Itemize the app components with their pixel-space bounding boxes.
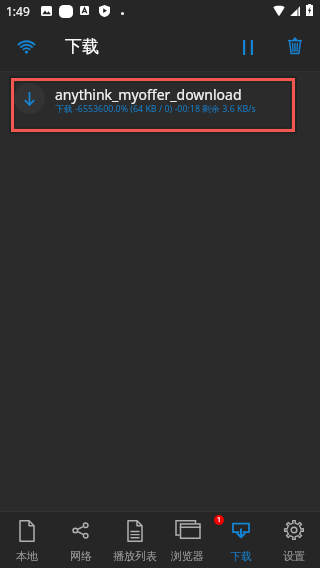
staticText: 1:49 [6,3,30,19]
button[interactable]: 设置 [267,512,320,568]
button[interactable]: Pause [230,29,266,65]
button[interactable]: 本地 [0,512,54,568]
staticText: 下载 [230,549,252,563]
staticText: 下载 [65,36,99,57]
staticText: 网络 [70,549,92,563]
staticText: 播放列表 [113,549,157,563]
button[interactable]: 网络 [54,512,108,568]
staticText: 浏览器 [171,549,204,563]
button[interactable]: anythink_myoffer_download [10,77,296,133]
button[interactable]: 浏览器 [161,512,214,568]
staticText: 本地 [16,549,38,563]
staticText: 下载 -6553600.0% (64 KB / 0) -00:18 剩余 3.6… [55,103,256,115]
button[interactable]: Wi-Fi [10,30,42,62]
staticText: 设置 [283,549,305,563]
button[interactable]: 下载 [214,512,267,568]
button[interactable]: 播放列表 [108,512,161,568]
button[interactable]: Delete [277,28,313,64]
staticText: anythink_myoffer_download [55,85,242,104]
staticText: 1 [217,515,222,525]
